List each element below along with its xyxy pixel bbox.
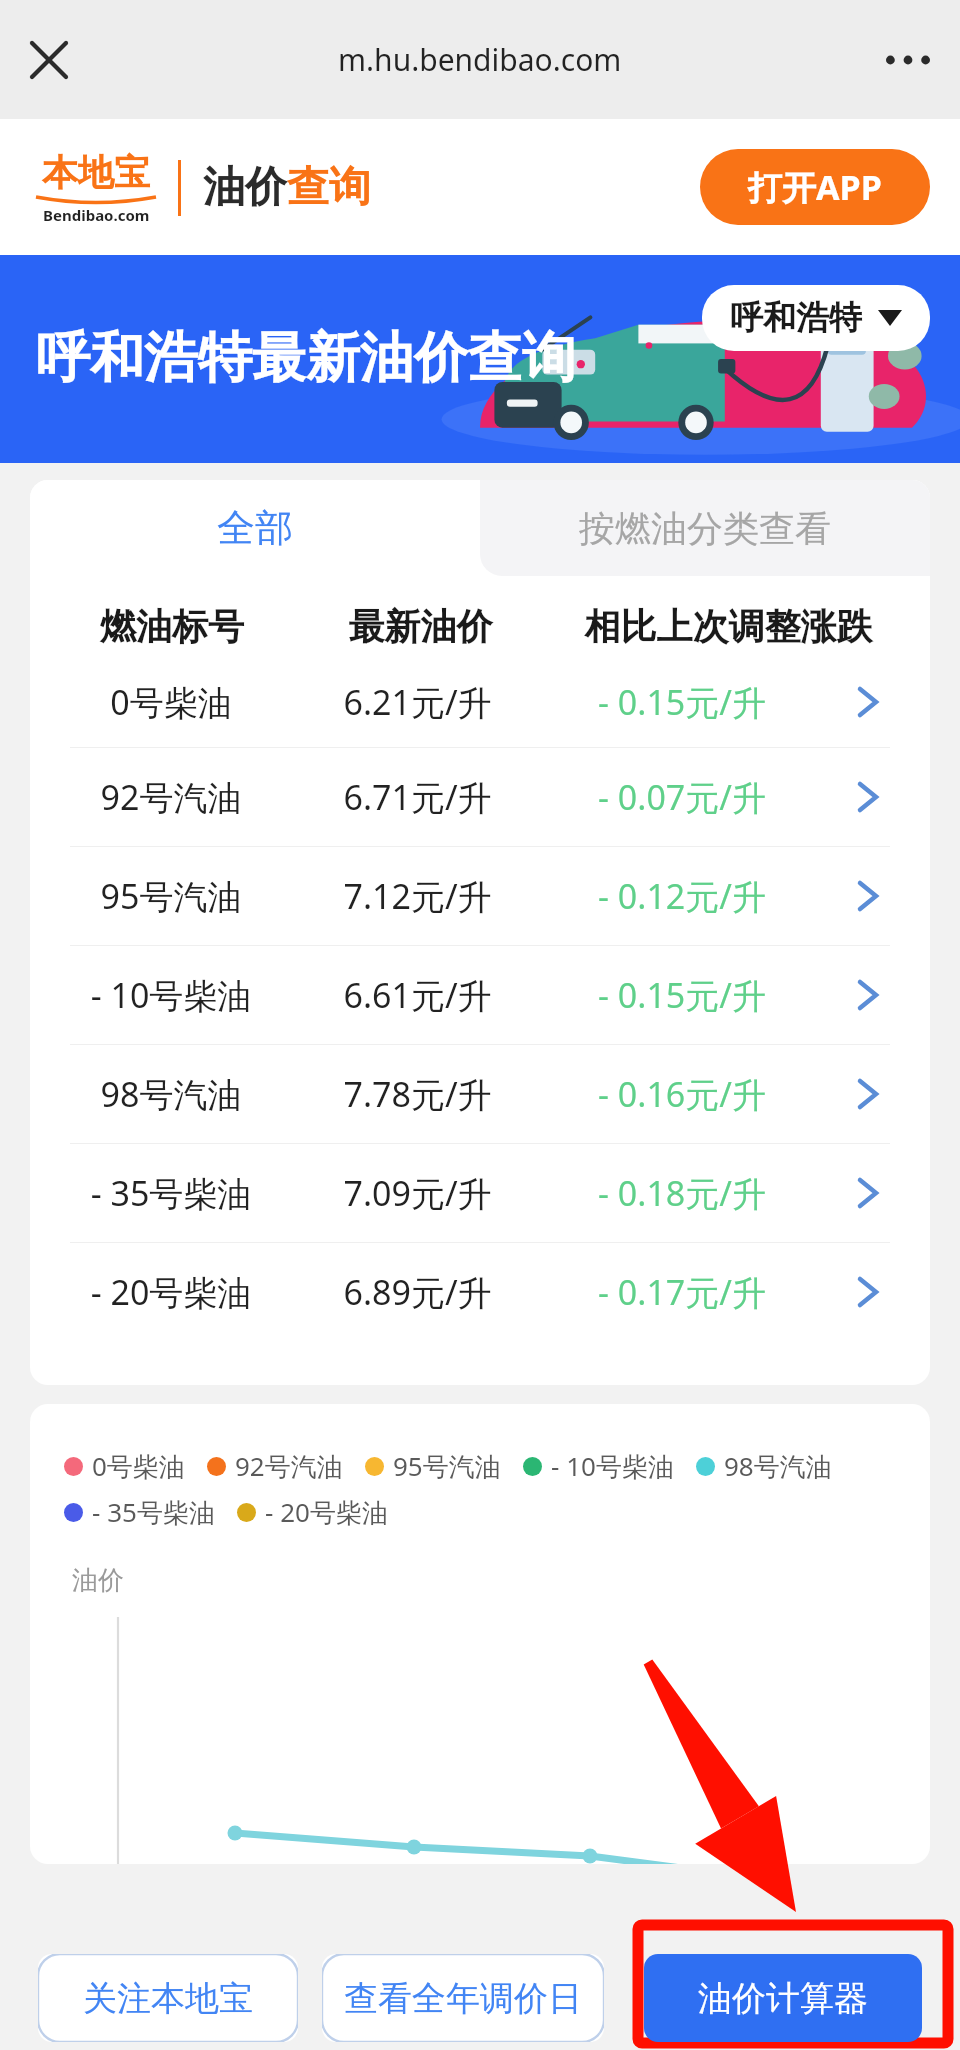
staticText: - 0.07元/升 xyxy=(541,774,823,820)
staticText: 关注本地宝 xyxy=(83,1977,253,2020)
staticText: 6.89元/升 xyxy=(294,1269,541,1315)
staticText: 7.12元/升 xyxy=(294,873,541,919)
staticText: m.hu.bendibao.com xyxy=(338,39,622,80)
staticText: 油价 xyxy=(72,1564,124,1597)
staticText: 7.09元/升 xyxy=(294,1170,541,1216)
staticText: 油价计算器 xyxy=(698,1977,868,2020)
staticText: 全部 xyxy=(217,504,293,552)
button[interactable]: - 35号柴油 xyxy=(30,1144,930,1242)
staticText: 98号汽油 xyxy=(48,1071,294,1117)
staticText: - 0.16元/升 xyxy=(541,1071,823,1117)
staticText: - 0.17元/升 xyxy=(541,1269,823,1315)
button[interactable]: 按燃油分类查看 xyxy=(480,480,930,576)
button[interactable]: 油价计算器 xyxy=(644,1954,922,2042)
staticText: - 0.18元/升 xyxy=(541,1170,823,1216)
button[interactable]: More options xyxy=(880,32,936,88)
staticText: - 10号柴油 xyxy=(48,972,294,1018)
staticText: 油价 xyxy=(203,161,287,214)
staticText: - 35号柴油 xyxy=(48,1170,294,1216)
button[interactable]: - 20号柴油 xyxy=(30,1243,930,1341)
staticText: Bendibao.com xyxy=(43,205,150,225)
staticText: 本地宝 xyxy=(42,150,150,195)
staticText: 6.61元/升 xyxy=(294,972,541,1018)
staticText: - 0.15元/升 xyxy=(541,679,823,725)
staticText: 呼和浩特 xyxy=(730,297,862,339)
staticText: 92号汽油 xyxy=(235,1448,343,1484)
button[interactable]: 全部 xyxy=(30,480,480,576)
staticText: 95号汽油 xyxy=(393,1448,501,1484)
staticText: 相比上次调整涨跌 xyxy=(545,604,912,649)
button[interactable]: 查看全年调价日 xyxy=(322,1954,604,2042)
staticText: - 0.12元/升 xyxy=(541,873,823,919)
staticText: - 0.15元/升 xyxy=(541,972,823,1018)
staticText: 按燃油分类查看 xyxy=(579,506,831,551)
staticText: 95号汽油 xyxy=(48,873,294,919)
staticText: - 20号柴油 xyxy=(48,1269,294,1315)
staticText: - 20号柴油 xyxy=(265,1494,388,1530)
staticText: 最新油价 xyxy=(296,604,545,649)
staticText: 6.71元/升 xyxy=(294,774,541,820)
staticText: 打开APP xyxy=(748,164,882,210)
staticText: 6.21元/升 xyxy=(294,679,541,725)
staticText: 燃油标号 xyxy=(48,604,296,649)
staticText: 查询 xyxy=(287,161,371,214)
staticText: - 35号柴油 xyxy=(92,1494,215,1530)
button[interactable]: 0号柴油 xyxy=(30,657,930,747)
staticText: 查看全年调价日 xyxy=(344,1977,582,2020)
button[interactable]: 95号汽油 xyxy=(30,847,930,945)
button[interactable]: 98号汽油 xyxy=(30,1045,930,1143)
button[interactable]: 关注本地宝 xyxy=(38,1954,298,2042)
button[interactable]: 92号汽油 xyxy=(30,748,930,846)
staticText: - 10号柴油 xyxy=(551,1448,674,1484)
staticText: 呼和浩特最新油价查询 xyxy=(36,324,576,392)
staticText: 98号汽油 xyxy=(724,1448,832,1484)
button[interactable]: 打开APP xyxy=(700,149,930,225)
button[interactable]: 呼和浩特 xyxy=(702,285,930,351)
button[interactable]: - 10号柴油 xyxy=(30,946,930,1044)
staticText: 0号柴油 xyxy=(92,1448,185,1484)
button[interactable]: Close xyxy=(22,33,76,87)
staticText: 92号汽油 xyxy=(48,774,294,820)
staticText: 0号柴油 xyxy=(48,679,294,725)
staticText: 7.78元/升 xyxy=(294,1071,541,1117)
